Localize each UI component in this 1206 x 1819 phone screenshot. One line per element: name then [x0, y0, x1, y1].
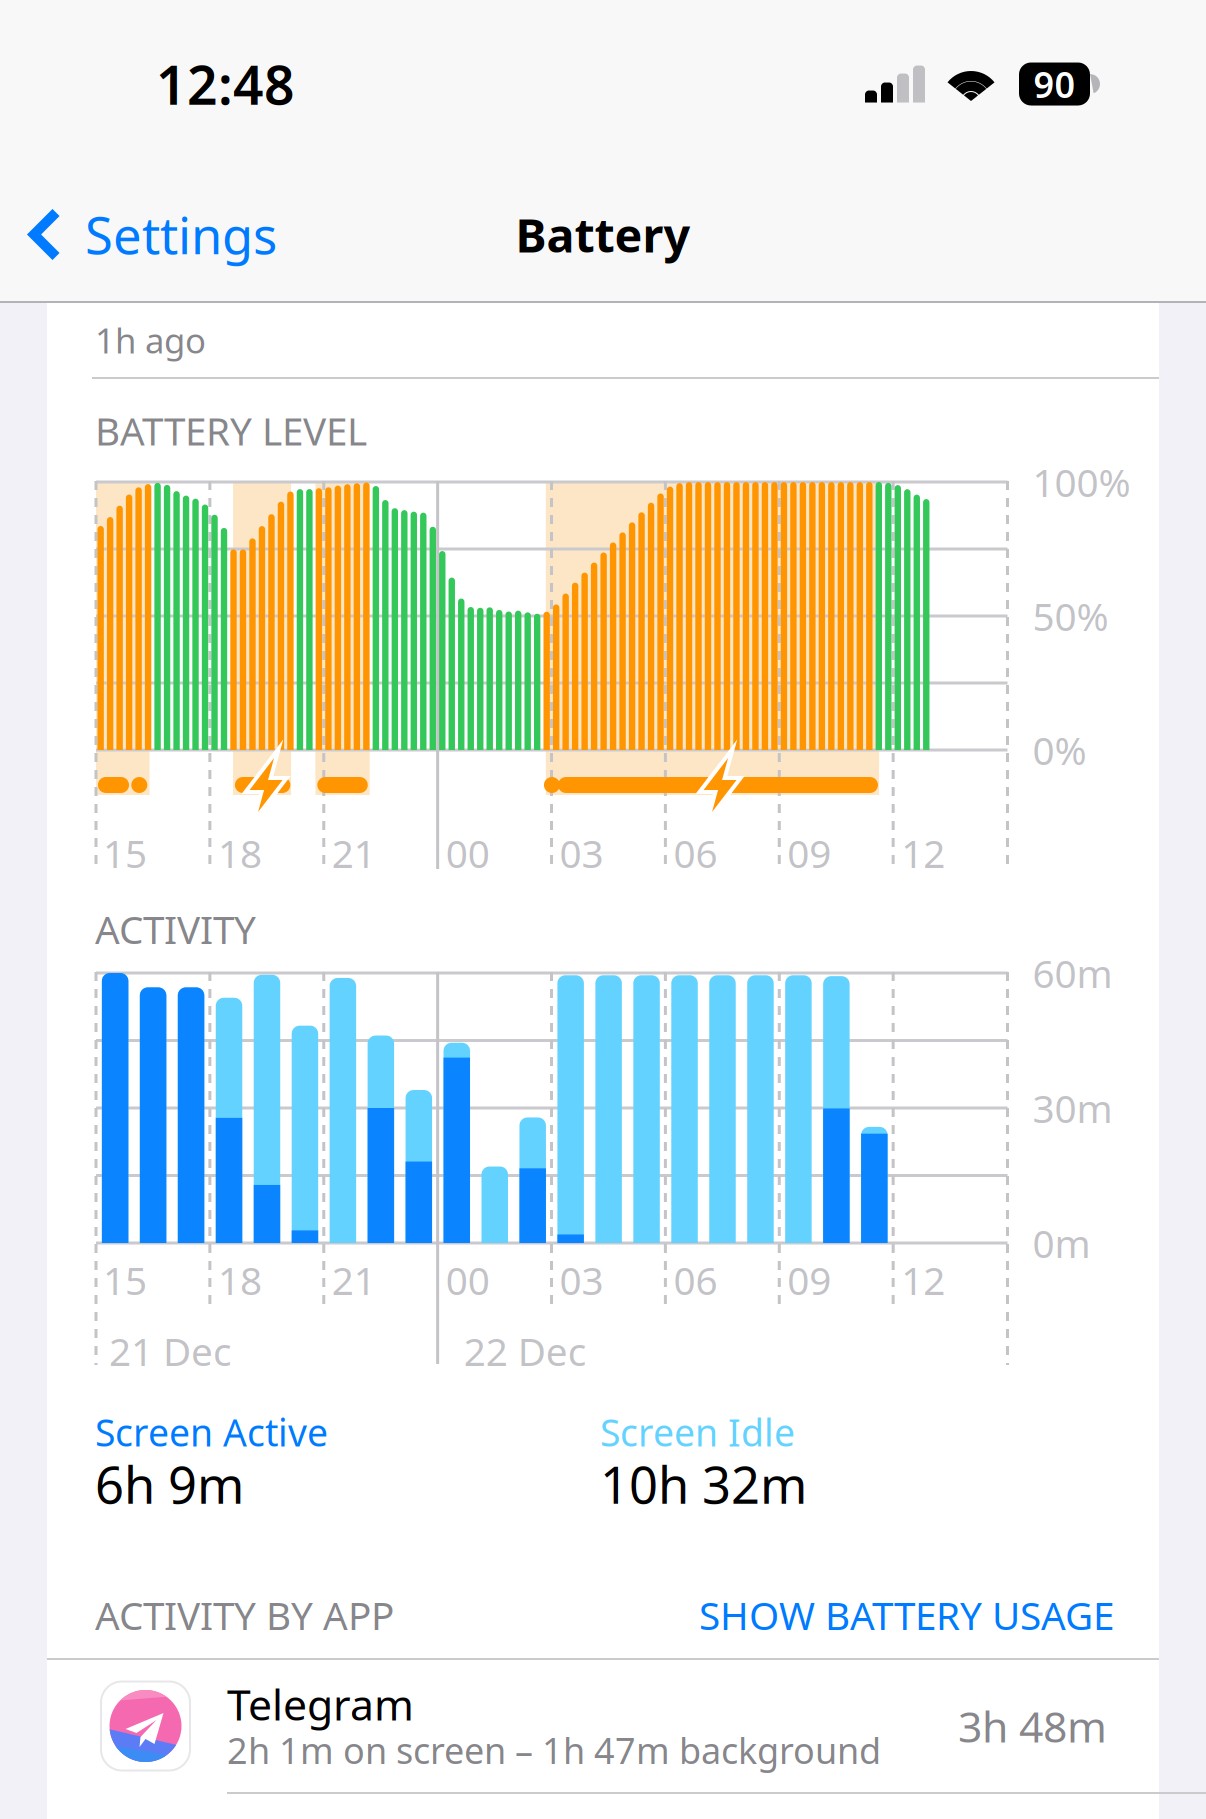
staticText: 2h 1m on screen – 1h 47m background [227, 1726, 881, 1774]
staticText: 06 [673, 1254, 717, 1306]
staticText: 21 Dec [109, 1325, 232, 1377]
staticText: Battery [515, 203, 690, 265]
staticText: 50% [1032, 590, 1108, 642]
staticText: 21 [332, 827, 376, 879]
staticText: 0m [1032, 1217, 1090, 1269]
staticText: SHOW BATTERY USAGE [699, 1589, 1114, 1641]
staticText: 09 [787, 1254, 831, 1306]
staticText: 1h ago [95, 317, 206, 363]
button[interactable]: SHOW BATTERY USAGE [699, 1589, 1114, 1641]
button[interactable]: Settings [0, 183, 277, 286]
staticText: 00 [446, 827, 490, 879]
staticText: 12:48 [156, 49, 295, 119]
staticText: 18 [218, 1254, 262, 1306]
staticText: Screen Idle [600, 1407, 795, 1457]
staticText: 03 [559, 827, 603, 879]
staticText: BATTERY LEVEL [95, 405, 367, 456]
staticText: 18 [218, 827, 262, 879]
staticText: 09 [787, 827, 831, 879]
staticText: ACTIVITY BY APP [95, 1589, 394, 1641]
staticText: 0% [1032, 724, 1086, 776]
staticText: Telegram [227, 1676, 414, 1732]
staticText: 03 [559, 1254, 603, 1306]
staticText: 100% [1032, 456, 1130, 508]
button[interactable]: Telegram [0, 1660, 1206, 1794]
staticText: 3h 48m [958, 1698, 1107, 1754]
staticText: 21 [332, 1254, 376, 1306]
staticText: 60m [1032, 947, 1112, 999]
staticText: 10h 32m [600, 1450, 807, 1518]
staticText: Screen Active [95, 1407, 328, 1457]
staticText: 15 [103, 827, 147, 879]
staticText: 12 [901, 827, 945, 879]
staticText: 90 [1033, 60, 1075, 108]
staticText: ACTIVITY [95, 903, 256, 955]
staticText: Settings [85, 201, 277, 268]
staticText: 22 Dec [464, 1325, 587, 1377]
staticText: 15 [103, 1254, 147, 1306]
staticText: 12 [901, 1254, 945, 1306]
staticText: 30m [1032, 1082, 1112, 1134]
staticText: 6h 9m [95, 1450, 244, 1518]
staticText: 06 [673, 827, 717, 879]
staticText: 00 [446, 1254, 490, 1306]
